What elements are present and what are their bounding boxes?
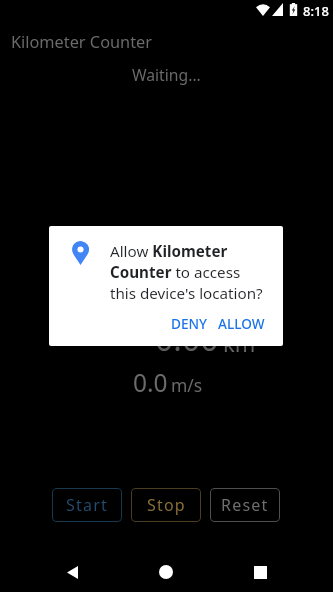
button[interactable]: Stop [131, 488, 201, 522]
button[interactable]: Back [51, 559, 93, 585]
button[interactable]: Home [145, 559, 187, 585]
staticText: ALLOW [218, 314, 265, 333]
staticText: m/s [171, 373, 203, 397]
staticText: this device's location? [110, 283, 263, 304]
staticText: 0.0 [133, 366, 168, 399]
button[interactable]: DENY [162, 309, 216, 338]
button[interactable]: ALLOW [209, 309, 274, 338]
staticText: Start [66, 494, 108, 516]
staticText: km [223, 328, 256, 358]
staticText: 0.00 [155, 317, 219, 361]
staticText: Counter to access [110, 262, 241, 283]
staticText: Reset [221, 494, 269, 516]
staticText: DENY [171, 314, 207, 333]
button[interactable]: Start [52, 488, 122, 522]
button[interactable]: Recent apps [239, 559, 281, 585]
staticText: Allow Kilometer [110, 241, 228, 262]
staticText: 8:18 [303, 2, 329, 20]
button[interactable]: Reset [210, 488, 280, 522]
staticText: Stop [147, 494, 186, 516]
staticText: Kilometer Counter [11, 31, 152, 53]
staticText: Waiting... [132, 64, 201, 85]
